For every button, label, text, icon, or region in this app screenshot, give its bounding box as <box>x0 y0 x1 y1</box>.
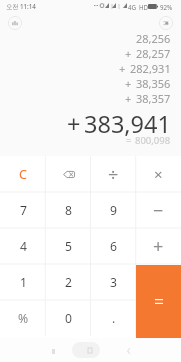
staticText: ÷ <box>108 162 119 187</box>
button[interactable]: 1 <box>0 264 46 300</box>
staticText: 4 <box>20 238 27 255</box>
button[interactable]: − <box>136 192 181 228</box>
staticText: 6 <box>110 238 117 255</box>
staticText: 282,931 <box>130 61 171 76</box>
staticText: + <box>119 61 126 76</box>
button[interactable]: 9 <box>91 192 136 228</box>
button[interactable]: 0 <box>46 300 91 336</box>
staticText: + <box>153 234 164 259</box>
button[interactable]: 3 <box>91 264 136 300</box>
staticText: . <box>112 310 116 327</box>
staticText: × <box>154 164 163 184</box>
staticText: 38,357 <box>136 91 171 106</box>
staticText: 0 <box>65 310 72 327</box>
button[interactable]: Backspace <box>46 156 91 192</box>
button[interactable]: % <box>0 300 46 336</box>
staticText: 1 <box>20 274 27 291</box>
staticText: = <box>126 134 132 146</box>
staticText: − <box>153 198 164 223</box>
staticText: 28,256 <box>136 31 171 46</box>
staticText: HD <box>139 3 149 11</box>
staticText: + <box>125 76 132 91</box>
button[interactable]: 8 <box>46 192 91 228</box>
staticText: 9 <box>110 202 117 219</box>
staticText: 8 <box>65 202 72 219</box>
button[interactable]: 5 <box>46 228 91 264</box>
staticText: % <box>18 310 29 327</box>
button[interactable]: 4 <box>0 228 46 264</box>
staticText: 383,941 <box>84 108 171 138</box>
button[interactable]: . <box>91 300 136 336</box>
staticText: 2 <box>65 274 72 291</box>
button[interactable]: Recent apps <box>43 341 63 361</box>
staticText: 4G <box>128 3 137 11</box>
button[interactable]: × <box>136 156 181 192</box>
button[interactable]: Home <box>72 342 100 358</box>
staticText: 3 <box>110 274 117 291</box>
staticText: 5 <box>65 238 72 255</box>
button[interactable]: Equals <box>136 265 181 338</box>
staticText: 38,356 <box>136 76 171 91</box>
button[interactable]: 7 <box>0 192 46 228</box>
staticText: C <box>19 166 27 183</box>
staticText: 오전 11:14 <box>6 2 36 10</box>
staticText: 92% <box>160 3 173 11</box>
staticText: 800,098 <box>135 134 171 146</box>
staticText: + <box>67 108 81 138</box>
button[interactable]: 2 <box>46 264 91 300</box>
staticText: + <box>125 91 132 106</box>
button[interactable]: Scientific calculator <box>155 12 177 34</box>
button[interactable]: Back <box>118 341 138 361</box>
button[interactable]: Calculation history <box>4 12 26 34</box>
button[interactable]: ÷ <box>91 156 136 192</box>
button[interactable]: + <box>136 228 181 264</box>
staticText: 7 <box>20 202 27 219</box>
button[interactable]: C <box>0 156 46 192</box>
staticText: 28,257 <box>136 46 171 61</box>
staticText: + <box>125 46 132 61</box>
button[interactable]: 6 <box>91 228 136 264</box>
